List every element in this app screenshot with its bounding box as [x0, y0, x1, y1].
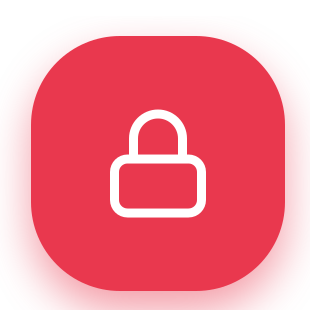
button[interactable]: Lock	[31, 36, 285, 291]
